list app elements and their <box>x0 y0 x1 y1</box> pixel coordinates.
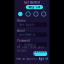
staticText: Step 1/4 <box>28 5 40 9</box>
staticText: 8+ characters <box>19 43 36 46</box>
staticText: jane@mail.co <box>19 33 36 36</box>
button[interactable]: Jane Apple <box>17 22 47 27</box>
staticText: Jane Apple <box>19 23 35 26</box>
staticText: Have an account? <box>15 57 37 60</box>
staticText: Get started <box>24 1 40 4</box>
staticText: Password <box>17 39 30 42</box>
button[interactable]: jane@mail.co <box>17 32 47 37</box>
staticText: Name <box>17 19 26 22</box>
button[interactable]: Sign in <box>38 57 48 60</box>
button[interactable]: Step 1/4 <box>26 5 43 9</box>
staticText: Sign in <box>38 57 48 60</box>
button[interactable]: Continue <box>33 51 47 56</box>
button[interactable]: 8+ characters <box>17 42 47 47</box>
staticText: We never share your details. <box>17 45 44 52</box>
staticText: Email <box>17 29 25 32</box>
staticText: Continue <box>34 50 47 57</box>
